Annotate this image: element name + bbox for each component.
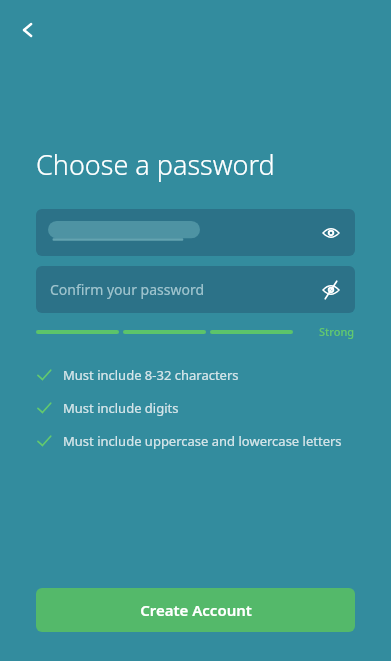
button[interactable]: Show password: [317, 276, 345, 304]
button[interactable]: Back: [8, 10, 48, 50]
staticText: Create Account: [140, 600, 252, 620]
button[interactable]: Hide password: [36, 209, 355, 256]
staticText: Choose a password: [36, 146, 275, 183]
staticText: Strong: [319, 324, 355, 339]
button[interactable]: Create Account: [36, 588, 355, 632]
staticText: Must include digits: [63, 399, 179, 417]
staticText: Must include 8-32 characters: [63, 366, 239, 384]
button[interactable]: Hide password: [317, 219, 345, 247]
button[interactable]: Confirm your password: [36, 266, 355, 313]
staticText: Confirm your password: [50, 280, 205, 299]
staticText: Must include uppercase and lowercase let…: [63, 432, 342, 450]
